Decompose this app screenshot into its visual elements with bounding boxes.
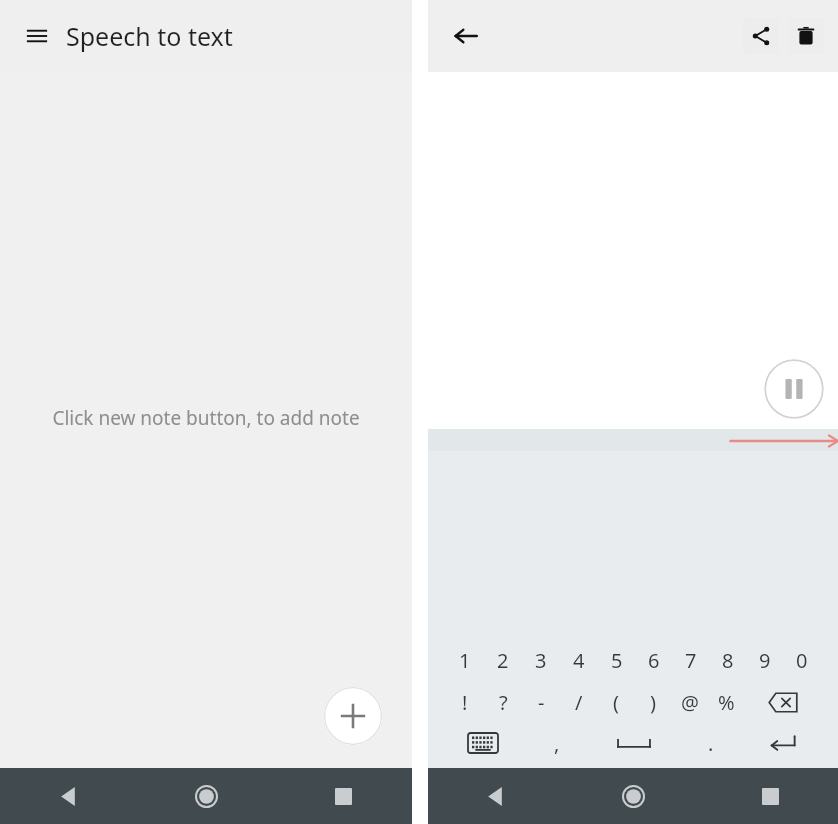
button[interactable]: Recent apps — [745, 771, 795, 821]
button[interactable]: 5 — [598, 643, 635, 677]
button[interactable]: Navigate back — [448, 18, 484, 54]
staticText: Click new note button, to add note — [0, 405, 412, 431]
button[interactable]: 2 — [484, 643, 522, 677]
staticText: ( — [613, 689, 619, 716]
button[interactable]: , — [520, 725, 593, 761]
staticText: % — [718, 689, 735, 716]
staticText: 9 — [759, 647, 771, 674]
staticText: ) — [650, 689, 656, 716]
button[interactable]: % — [708, 685, 745, 719]
staticText: 2 — [497, 647, 509, 674]
button[interactable]: Pause recording — [764, 359, 824, 419]
button[interactable]: Share — [743, 18, 779, 54]
button[interactable]: Space — [593, 725, 674, 761]
staticText: 1 — [459, 647, 471, 674]
staticText: ? — [499, 689, 508, 716]
staticText: 3 — [535, 647, 547, 674]
staticText: , — [554, 730, 560, 757]
button[interactable]: Home — [181, 771, 231, 821]
staticText: 0 — [796, 647, 808, 674]
staticText: @ — [681, 689, 699, 716]
staticText: - — [538, 689, 545, 716]
button[interactable]: 3 — [522, 643, 560, 677]
button[interactable]: / — [560, 685, 597, 719]
button[interactable]: 4 — [560, 643, 598, 677]
button[interactable]: ) — [634, 685, 671, 719]
button[interactable]: Open navigation menu — [22, 21, 52, 51]
staticText: . — [708, 730, 714, 757]
staticText: Speech to text — [66, 19, 233, 53]
button[interactable]: Enter — [747, 725, 820, 761]
button[interactable]: - — [522, 685, 560, 719]
button[interactable]: ? — [484, 685, 522, 719]
button[interactable]: 0 — [783, 643, 820, 677]
button[interactable]: Back — [44, 771, 94, 821]
button[interactable]: 7 — [672, 643, 709, 677]
button[interactable]: ! — [446, 685, 484, 719]
button[interactable]: Add new note — [324, 687, 382, 745]
button[interactable]: 8 — [709, 643, 746, 677]
button[interactable]: Switch keyboard — [446, 725, 520, 761]
staticText: 7 — [685, 647, 697, 674]
staticText: ! — [462, 689, 468, 716]
staticText: / — [575, 689, 583, 716]
staticText: 8 — [722, 647, 734, 674]
staticText: 6 — [648, 647, 660, 674]
staticText: 4 — [573, 647, 585, 674]
button[interactable]: 9 — [746, 643, 783, 677]
button[interactable]: ( — [597, 685, 634, 719]
button[interactable]: 1 — [446, 643, 484, 677]
button[interactable]: Delete — [788, 18, 824, 54]
staticText: 5 — [611, 647, 623, 674]
button[interactable]: Recent apps — [318, 771, 368, 821]
button[interactable]: . — [674, 725, 747, 761]
button[interactable]: @ — [671, 685, 708, 719]
button[interactable]: 6 — [635, 643, 672, 677]
button[interactable]: Back — [471, 771, 521, 821]
button[interactable]: Backspace — [745, 685, 820, 719]
button[interactable]: Home — [608, 771, 658, 821]
